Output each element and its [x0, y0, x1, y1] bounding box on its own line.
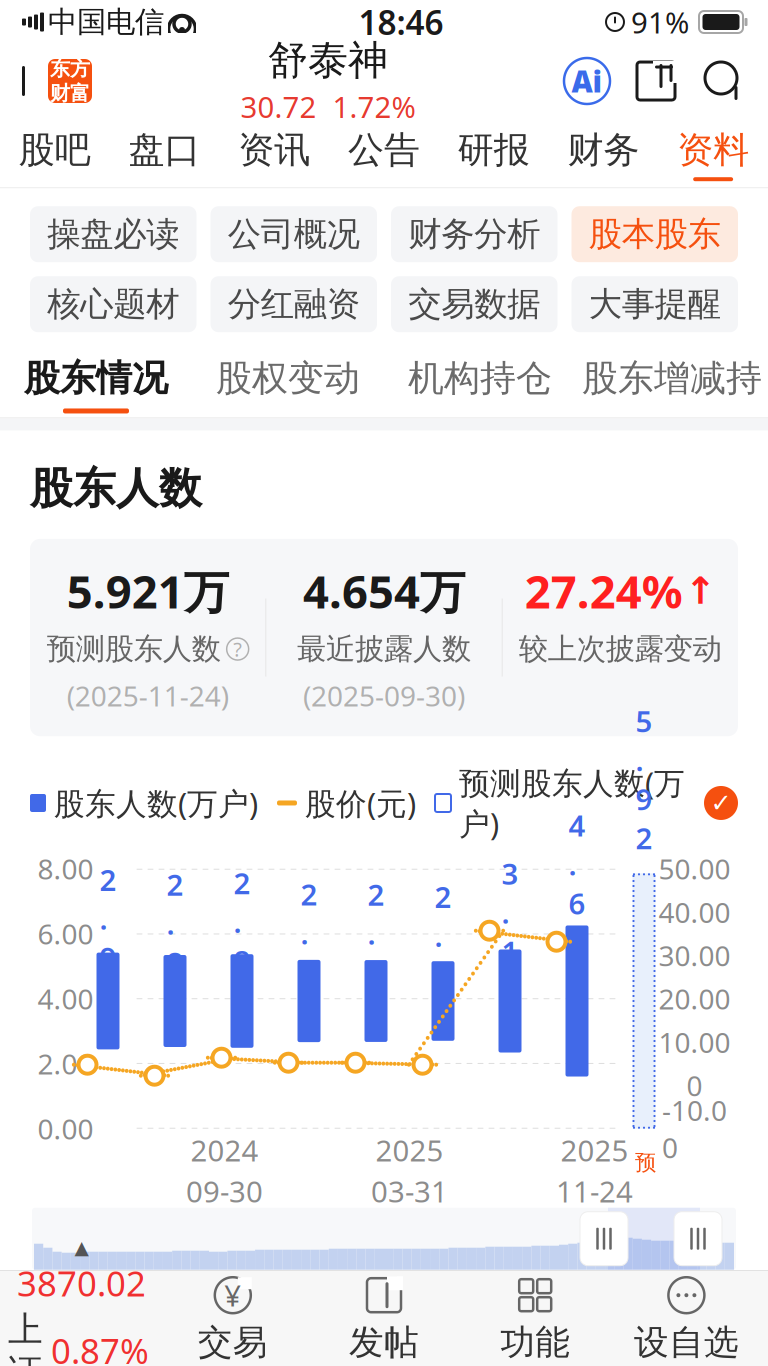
staticText: 8.00 — [37, 850, 93, 887]
staticText: 2025 — [375, 1131, 443, 1170]
staticText: 预 — [635, 1150, 656, 1176]
staticText: 发帖 — [349, 1321, 419, 1364]
button[interactable]: ¥ — [157, 1273, 308, 1364]
staticText: 2025-06-30 — [388, 1299, 570, 1345]
staticText: 40.00 — [658, 893, 730, 931]
staticText: 2025-03- — [596, 1299, 738, 1345]
button[interactable]: 操盘必读 — [30, 206, 196, 262]
staticText: ▲ — [75, 1237, 89, 1258]
staticText: 设自选 — [634, 1321, 739, 1364]
button[interactable]: 机构持仓 — [384, 348, 576, 417]
staticText: 舒泰神 — [268, 36, 388, 85]
staticText: ✓ — [710, 789, 731, 817]
staticText: ¥ — [224, 1276, 241, 1315]
staticText: 股东人数 — [30, 462, 202, 515]
button[interactable]: 股东情况 — [0, 348, 192, 417]
button[interactable]: 核心题材 — [30, 276, 196, 332]
staticText: 上证 — [8, 1308, 43, 1366]
staticText: 机构持仓 — [408, 356, 552, 400]
staticText: 大事提醒 — [589, 284, 721, 325]
button[interactable]: 公司概况 — [210, 206, 377, 262]
staticText: 股东情况 — [24, 356, 168, 400]
staticText: -10.00 — [662, 1091, 727, 1166]
staticText: 预测股东人数 — [47, 631, 221, 667]
button[interactable]: 财务分析 — [391, 206, 557, 262]
staticText: 核心题材 — [47, 284, 179, 325]
staticText: 较上次披露变动 — [519, 631, 722, 667]
staticText: 中国电信 — [48, 4, 164, 40]
button[interactable]: 大事提醒 — [571, 276, 738, 332]
button[interactable]: 盘口 — [110, 118, 219, 187]
button[interactable]: 股本股东 — [571, 206, 738, 262]
button[interactable]: 交易数据 — [391, 276, 557, 332]
staticText: 变动时间 — [30, 1300, 170, 1343]
button[interactable]: 股权变动 — [192, 348, 384, 417]
button[interactable]: 发帖 — [308, 1273, 460, 1364]
staticText: 股吧 — [19, 128, 91, 172]
button[interactable]: 设自选 — [611, 1273, 762, 1364]
staticText: 2.52 — [367, 875, 384, 1031]
button[interactable]: 股东增减持 — [576, 348, 768, 417]
staticText: 资料 — [677, 128, 749, 172]
staticText: 10.00 — [658, 1023, 730, 1061]
staticText: 0.87% — [51, 1328, 149, 1366]
staticText: 2.00 — [37, 1045, 93, 1082]
staticText: 2.45 — [434, 877, 451, 1033]
button[interactable]: 股吧 — [0, 118, 110, 187]
staticText: 东方 — [50, 56, 90, 81]
staticText: 预测股东人数(万户) — [459, 762, 685, 844]
staticText: 2025-09-30 — [180, 1299, 362, 1345]
button[interactable]: 返回 东方财富 — [0, 53, 92, 109]
staticText: 50.00 — [658, 850, 730, 887]
staticText: 4.00 — [37, 980, 93, 1017]
staticText: 资讯 — [238, 128, 310, 172]
button[interactable]: ▲ — [6, 1237, 157, 1366]
button[interactable]: 资料 — [658, 118, 768, 187]
staticText: (2025-11-24) — [67, 677, 229, 714]
staticText: 功能 — [500, 1321, 570, 1364]
staticText: 股东人数(万户) — [54, 783, 258, 823]
button[interactable]: 功能 — [460, 1273, 611, 1364]
button[interactable]: 起始范围 — [580, 1212, 628, 1266]
staticText: 公告 — [348, 128, 420, 172]
staticText: 20.00 — [658, 980, 730, 1017]
button[interactable]: AI 助手 — [564, 58, 610, 104]
button[interactable]: 分享 — [634, 59, 678, 103]
staticText: 4.654万 — [303, 561, 465, 621]
staticText: 5.921万 — [67, 561, 229, 621]
staticText: (2025-09-30) — [303, 677, 465, 714]
staticText: 分红融资 — [228, 284, 360, 325]
staticText: 5.92 — [635, 701, 652, 857]
staticText: 4.65 — [568, 806, 585, 962]
staticText: 股本股东 — [589, 214, 721, 255]
staticText: 财务 — [567, 128, 639, 172]
staticText: 最近披露人数 — [297, 631, 471, 667]
staticText: 2.98 — [99, 860, 116, 1016]
staticText: 股价(元) — [305, 783, 416, 823]
staticText: 公司概况 — [228, 214, 360, 255]
button[interactable]: 切换图例 — [704, 786, 738, 820]
staticText: ↑ — [685, 570, 716, 612]
staticText: 30.72 1.72% — [240, 87, 415, 126]
button[interactable]: 财务 — [549, 118, 658, 187]
button[interactable]: 公告 — [329, 118, 439, 187]
button[interactable]: 研报 — [439, 118, 549, 187]
staticText: 2025 — [560, 1131, 628, 1170]
button[interactable]: 结束范围 — [674, 1212, 722, 1266]
staticText: 盘口 — [129, 128, 201, 172]
staticText: 2024 — [190, 1131, 258, 1170]
staticText: 91% — [631, 2, 689, 41]
staticText: 2.88 — [233, 863, 250, 1019]
button[interactable]: 分红融资 — [210, 276, 377, 332]
staticText: 股权变动 — [216, 356, 360, 400]
staticText: 6.00 — [37, 915, 93, 952]
staticText: 2.83 — [166, 865, 183, 1021]
button[interactable]: 资讯 — [219, 118, 329, 187]
staticText: 09-30 — [186, 1172, 263, 1211]
staticText: 11-24 — [556, 1172, 633, 1211]
staticText: 操盘必读 — [47, 214, 179, 255]
button[interactable]: 搜索 — [702, 59, 746, 103]
staticText: 3870.02 — [17, 1260, 146, 1306]
staticText: Ai — [571, 61, 602, 100]
